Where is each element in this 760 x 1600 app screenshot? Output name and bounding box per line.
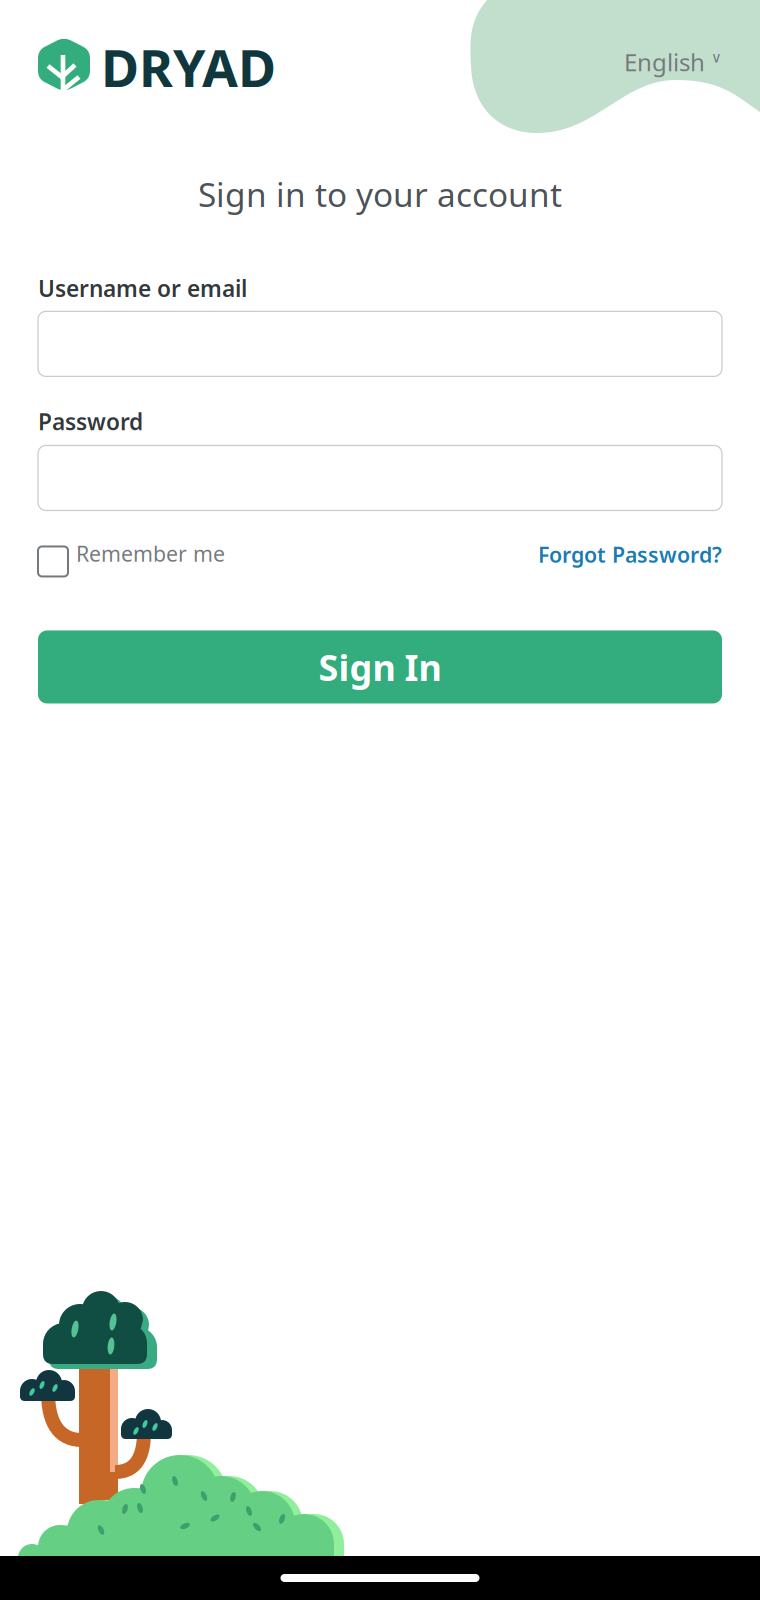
button[interactable]: English <box>624 51 722 83</box>
button[interactable]: Sign In <box>38 630 722 703</box>
staticText: Username or email <box>38 273 247 303</box>
staticText: ∨ <box>711 49 722 66</box>
staticText: Sign in to your account <box>198 172 562 216</box>
staticText: Sign In <box>318 643 441 691</box>
button[interactable]: Forgot Password? <box>538 547 722 576</box>
staticText: DRYAD <box>101 32 276 102</box>
staticText: Password <box>38 406 143 436</box>
staticText: Forgot Password? <box>538 540 722 569</box>
button[interactable]: Remember me <box>38 546 225 576</box>
staticText: English <box>624 46 705 78</box>
staticText: Remember me <box>76 539 225 568</box>
